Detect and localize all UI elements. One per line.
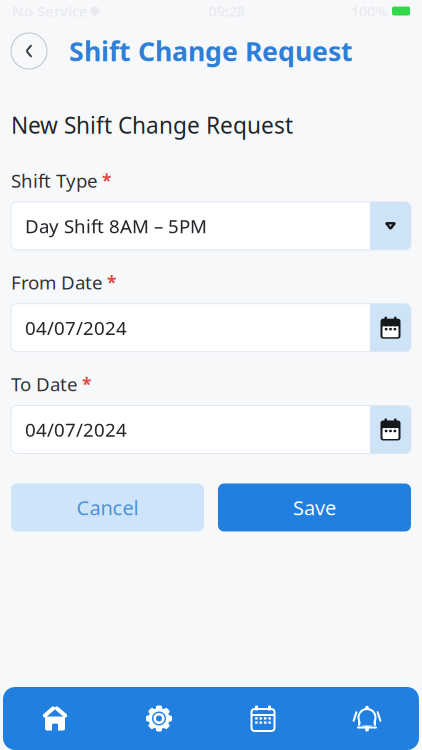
staticText: Save (293, 494, 336, 521)
staticText: 09:28 (208, 1, 244, 21)
staticText: No Service (12, 1, 88, 21)
staticText: From Date (11, 270, 103, 295)
staticText: 100% (351, 1, 388, 21)
button[interactable]: Home (3, 687, 107, 750)
staticText: * (102, 169, 111, 192)
staticText: To Date (11, 372, 78, 396)
staticText: Shift Change Request (69, 33, 353, 69)
button[interactable]: Back (7, 29, 51, 73)
staticText: Day Shift 8AM – 5PM (25, 213, 207, 238)
staticText: Cancel (76, 494, 138, 521)
staticText: New Shift Change Request (11, 110, 293, 140)
button[interactable]: Day Shift 8AM – 5PM (11, 193, 411, 250)
staticText: * (107, 271, 116, 294)
staticText: * (82, 373, 91, 396)
button[interactable]: Calendar (211, 687, 315, 750)
button[interactable]: Settings (107, 687, 211, 750)
staticText: Shift Type (11, 168, 98, 193)
button[interactable]: Cancel (11, 483, 204, 531)
staticText: 04/07/2024 (25, 315, 127, 340)
staticText: 04/07/2024 (25, 417, 127, 442)
button[interactable]: Save (218, 483, 411, 531)
button[interactable]: Notifications (315, 687, 419, 750)
button[interactable]: 04/07/2024 (11, 295, 411, 352)
button[interactable]: 04/07/2024 (11, 396, 411, 453)
